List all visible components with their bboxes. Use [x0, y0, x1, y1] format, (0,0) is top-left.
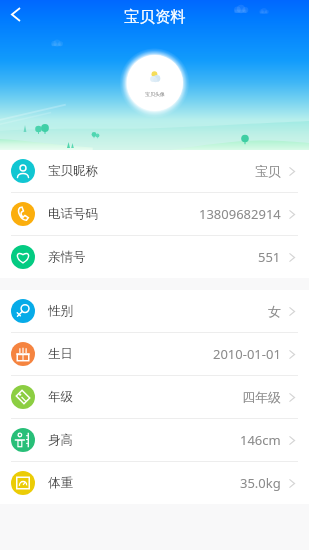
button[interactable]: 身高: [0, 419, 309, 461]
staticText: 年级: [48, 389, 73, 405]
staticText: 35.0kg: [240, 474, 281, 492]
staticText: 13809682914: [199, 205, 281, 223]
staticText: 女: [268, 303, 281, 319]
staticText: 亲情号: [48, 249, 86, 265]
staticText: 宝贝头像: [145, 91, 165, 97]
staticText: 宝贝资料: [124, 7, 186, 27]
staticText: 四年级: [242, 389, 281, 405]
button[interactable]: 年级: [0, 376, 309, 418]
button[interactable]: 体重: [0, 462, 309, 504]
staticText: 146cm: [240, 431, 281, 449]
staticText: 性别: [48, 303, 73, 319]
staticText: 电话号码: [48, 206, 98, 222]
staticText: 体重: [48, 475, 73, 491]
staticText: 宝贝: [255, 163, 281, 179]
staticText: 身高: [48, 432, 73, 448]
button[interactable]: 生日: [0, 333, 309, 375]
button[interactable]: Back: [0, 0, 30, 30]
button[interactable]: 宝贝头像: [127, 55, 183, 111]
staticText: 2010-01-01: [213, 345, 281, 363]
button[interactable]: 性别: [0, 290, 309, 332]
button[interactable]: 电话号码: [0, 193, 309, 235]
button[interactable]: 宝贝昵称: [0, 150, 309, 192]
staticText: 生日: [48, 346, 73, 362]
staticText: 551: [258, 248, 281, 266]
staticText: 宝贝昵称: [48, 163, 98, 179]
button[interactable]: 亲情号: [0, 236, 309, 278]
